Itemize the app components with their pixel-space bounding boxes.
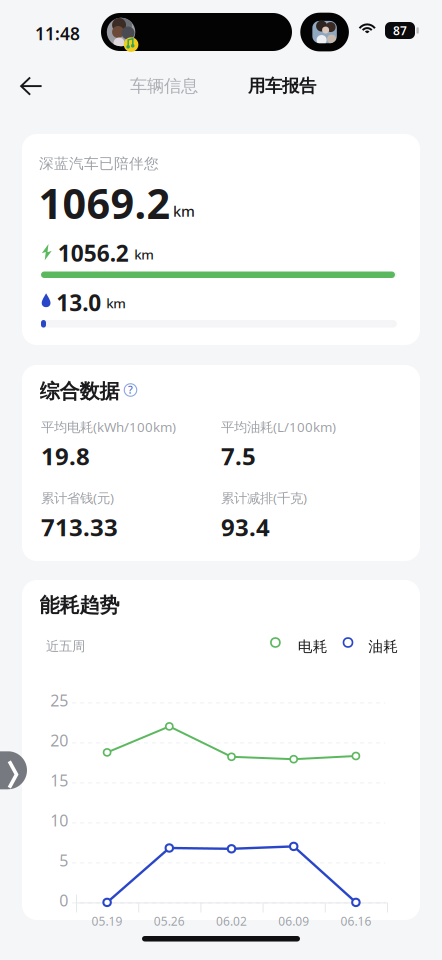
button[interactable]: 返回 xyxy=(8,64,54,108)
staticText: km xyxy=(173,201,195,221)
button[interactable]: 车辆信息 xyxy=(120,67,208,105)
button[interactable]: 展开侧边栏 xyxy=(0,751,27,789)
staticText: 05.26 xyxy=(154,913,185,929)
staticText: 能耗趋势 xyxy=(39,593,119,618)
staticText: 累计减排(千克) xyxy=(221,489,307,507)
staticText: 累计省钱(元) xyxy=(41,489,114,507)
staticText: 用车报告 xyxy=(248,75,316,97)
staticText: 06.09 xyxy=(278,913,309,929)
staticText: 06.16 xyxy=(340,913,371,929)
staticText: 1069.2 xyxy=(39,175,171,230)
staticText: km xyxy=(106,294,126,312)
staticText: 1056.2 xyxy=(58,238,129,268)
staticText: 19.8 xyxy=(41,440,90,472)
staticText: 25 xyxy=(50,690,68,711)
staticText: 87 xyxy=(393,22,407,38)
staticText: 电耗 xyxy=(298,637,328,655)
staticText: 05.19 xyxy=(92,913,123,929)
staticText: 11:48 xyxy=(35,22,80,45)
staticText: 油耗 xyxy=(368,637,398,655)
staticText: 7.5 xyxy=(221,440,256,472)
staticText: 713.33 xyxy=(41,511,118,543)
button[interactable]: 用车报告 xyxy=(238,67,326,105)
staticText: 10 xyxy=(50,810,68,831)
staticText: 06.02 xyxy=(216,913,247,929)
staticText: 93.4 xyxy=(221,511,270,543)
staticText: 近五周 xyxy=(46,638,85,654)
button[interactable]: 数据说明 xyxy=(124,383,137,396)
staticText: 5 xyxy=(59,850,68,871)
staticText: 20 xyxy=(50,730,68,751)
staticText: 平均电耗(kWh/100km) xyxy=(41,418,176,436)
staticText: 深蓝汽车已陪伴您 xyxy=(39,154,159,172)
staticText: km xyxy=(134,245,154,263)
staticText: 0 xyxy=(59,890,68,911)
staticText: 平均油耗(L/100km) xyxy=(221,418,336,436)
staticText: 15 xyxy=(50,770,68,791)
staticText: 13.0 xyxy=(56,287,101,318)
staticText: 车辆信息 xyxy=(130,75,198,97)
staticText: ? xyxy=(128,382,133,397)
staticText: 综合数据 xyxy=(39,379,119,404)
